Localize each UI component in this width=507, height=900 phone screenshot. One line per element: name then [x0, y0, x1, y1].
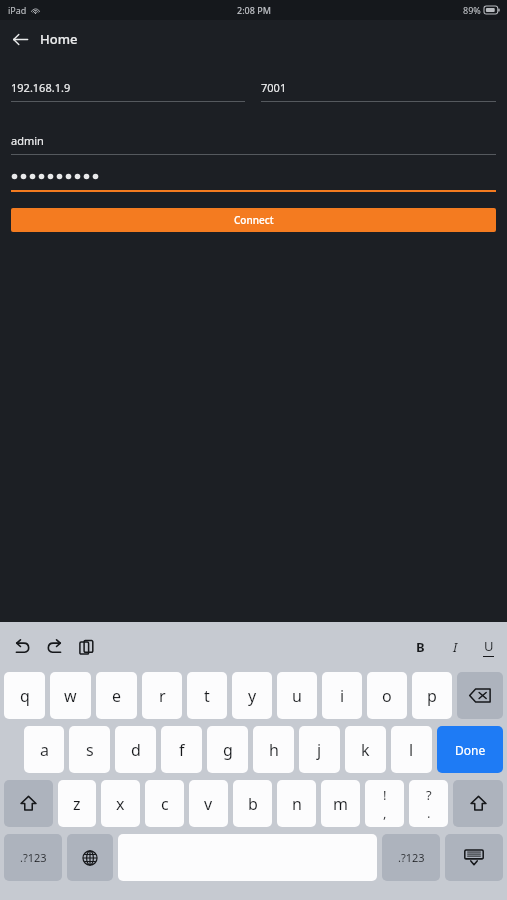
staticText: 192.168.1.9: [11, 80, 71, 95]
staticText: b: [248, 793, 258, 815]
button[interactable]: Change keyboard: [67, 834, 113, 881]
button[interactable]: v: [189, 780, 228, 827]
staticText: 2:08 PM: [237, 4, 271, 16]
button[interactable]: Shift: [453, 780, 503, 827]
staticText: t: [204, 685, 210, 707]
button[interactable]: d: [115, 726, 156, 773]
button[interactable]: Backspace: [457, 672, 503, 719]
button[interactable]: z: [58, 780, 96, 827]
staticText: I: [453, 638, 458, 656]
staticText: n: [292, 793, 302, 815]
staticText: v: [204, 793, 213, 815]
button[interactable]: ?: [409, 780, 448, 827]
staticText: h: [269, 739, 279, 761]
staticText: j: [317, 739, 322, 761]
button[interactable]: b: [233, 780, 272, 827]
button[interactable]: 192.168.1.9: [11, 74, 245, 102]
staticText: !: [383, 786, 387, 804]
button[interactable]: j: [299, 726, 340, 773]
staticText: w: [64, 685, 77, 707]
staticText: p: [427, 685, 437, 707]
button[interactable]: Shift: [4, 780, 53, 827]
staticText: e: [112, 685, 122, 707]
button[interactable]: k: [345, 726, 386, 773]
staticText: B: [416, 638, 425, 656]
staticText: x: [116, 793, 125, 815]
button[interactable]: i: [322, 672, 362, 719]
staticText: g: [223, 739, 233, 761]
staticText: l: [409, 739, 414, 761]
staticText: U: [484, 637, 494, 655]
staticText: q: [20, 685, 30, 707]
staticText: z: [73, 793, 81, 815]
button[interactable]: o: [367, 672, 407, 719]
button[interactable]: .?123: [4, 834, 62, 881]
button[interactable]: w: [50, 672, 91, 719]
button[interactable]: f: [161, 726, 202, 773]
staticText: a: [40, 739, 49, 761]
staticText: d: [131, 739, 141, 761]
staticText: u: [292, 685, 302, 707]
staticText: .?123: [398, 850, 425, 865]
button[interactable]: Back: [0, 20, 40, 58]
button[interactable]: n: [277, 780, 316, 827]
button[interactable]: g: [207, 726, 248, 773]
button[interactable]: U: [477, 636, 499, 658]
staticText: ,: [383, 804, 387, 822]
button[interactable]: .?123: [382, 834, 440, 881]
staticText: .: [427, 804, 431, 822]
button[interactable]: c: [145, 780, 184, 827]
button[interactable]: m: [321, 780, 360, 827]
button[interactable]: a: [24, 726, 64, 773]
button[interactable]: e: [96, 672, 137, 719]
staticText: Connect: [234, 213, 274, 227]
button[interactable]: l: [391, 726, 432, 773]
staticText: .?123: [20, 850, 47, 865]
staticText: k: [361, 739, 370, 761]
staticText: f: [179, 739, 185, 761]
button[interactable]: 7001: [261, 74, 496, 102]
button[interactable]: q: [4, 672, 45, 719]
staticText: m: [333, 793, 348, 815]
staticText: Done: [455, 742, 486, 758]
staticText: Home: [40, 30, 78, 48]
button[interactable]: Paste: [70, 631, 102, 663]
button[interactable]: t: [187, 672, 227, 719]
button[interactable]: admin: [11, 127, 496, 155]
staticText: c: [161, 793, 169, 815]
button[interactable]: y: [232, 672, 272, 719]
button[interactable]: Undo: [6, 631, 38, 663]
staticText: i: [340, 685, 345, 707]
staticText: o: [382, 685, 392, 707]
staticText: 7001: [261, 80, 287, 95]
staticText: iPad: [8, 4, 27, 16]
button[interactable]: Hide keyboard: [445, 834, 503, 881]
button[interactable]: Done: [437, 726, 503, 773]
button[interactable]: h: [253, 726, 294, 773]
button[interactable]: Redo: [38, 631, 70, 663]
button[interactable]: s: [69, 726, 110, 773]
button[interactable]: p: [412, 672, 452, 719]
staticText: r: [159, 685, 166, 707]
button[interactable]: B: [409, 636, 431, 658]
button[interactable]: x: [101, 780, 140, 827]
button[interactable]: Connect: [11, 208, 496, 232]
button[interactable]: r: [142, 672, 182, 719]
button[interactable]: I: [443, 636, 465, 658]
staticText: ?: [426, 786, 432, 804]
staticText: 89%: [463, 4, 481, 16]
button[interactable]: [11, 163, 496, 192]
button[interactable]: u: [277, 672, 317, 719]
staticText: admin: [11, 133, 44, 148]
staticText: y: [248, 685, 257, 707]
staticText: s: [86, 739, 94, 761]
button[interactable]: !: [365, 780, 404, 827]
